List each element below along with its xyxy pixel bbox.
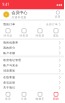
button[interactable]: 关于我们	[0, 85, 64, 90]
button[interactable]: 在线客服	[0, 75, 64, 80]
staticText: 我的优惠券	[3, 41, 18, 44]
button[interactable]: 我的积分	[0, 45, 64, 50]
staticText: 待发货	[19, 34, 28, 37]
button[interactable]: 待收货	[32, 29, 48, 37]
staticText: 购物车	[35, 97, 44, 100]
staticText: 设置	[55, 15, 61, 18]
staticText: 会员中心	[11, 10, 27, 15]
staticText: 开通享优惠	[11, 16, 26, 19]
button[interactable]: 消息通知	[0, 68, 64, 73]
button[interactable]: 首页	[0, 92, 16, 100]
staticText: 我的积分	[3, 46, 15, 49]
staticText: 关于我们	[3, 86, 15, 89]
button[interactable]: 设置	[55, 11, 61, 18]
button[interactable]: 购物车	[32, 92, 48, 100]
staticText: 待付款	[3, 34, 12, 37]
button[interactable]: 我的优惠券	[0, 40, 64, 45]
staticText: 在线客服	[3, 76, 15, 79]
staticText: 消息通知	[3, 69, 15, 72]
staticText: 退款	[53, 34, 59, 37]
button[interactable]: 分类	[16, 92, 32, 100]
button[interactable]: 待付款	[0, 29, 16, 37]
staticText: 我的订单	[3, 23, 15, 26]
staticText: 账户与安全	[3, 64, 18, 67]
staticText: 我的	[53, 97, 59, 100]
staticText: 全部订单	[46, 23, 58, 26]
button[interactable]: 意见反馈	[0, 80, 64, 85]
button[interactable]: 退款	[48, 29, 64, 37]
staticText: 账户余额	[3, 51, 15, 55]
staticText: 分类	[21, 97, 27, 100]
staticText: 待收货	[35, 34, 44, 37]
button[interactable]: 我的	[48, 92, 64, 100]
staticText: 9:41	[3, 3, 10, 6]
button[interactable]: 全部订单	[46, 22, 61, 26]
button[interactable]: 账户余额	[0, 50, 64, 56]
staticText: 意见反馈	[3, 81, 15, 84]
staticText: 收货地址管理	[3, 59, 21, 62]
button[interactable]: 待发货	[16, 29, 32, 37]
button[interactable]: 账户与安全	[0, 63, 64, 68]
staticText: 首页	[5, 97, 11, 100]
button[interactable]: 收货地址管理	[0, 58, 64, 63]
staticText: ▪▪▮	[56, 3, 61, 6]
